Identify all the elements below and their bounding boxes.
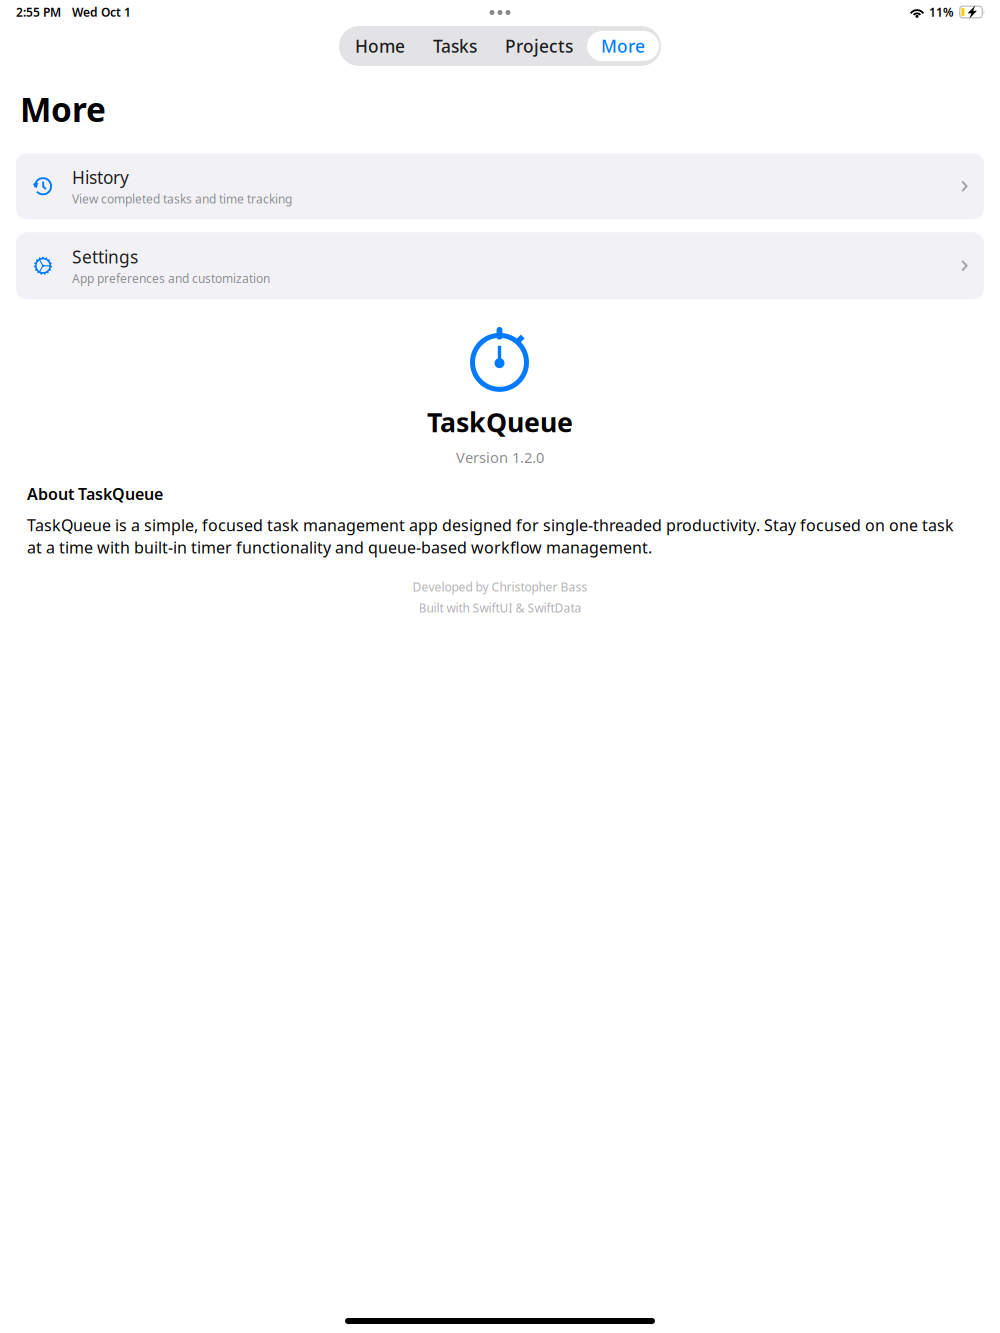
staticText: Developed by Christopher Bass	[412, 579, 587, 595]
staticText: Settings	[72, 245, 138, 268]
staticText: Home	[355, 34, 405, 57]
staticText: More	[20, 87, 106, 131]
staticText: 2:55 PM	[16, 4, 61, 20]
staticText: Version 1.2.0	[456, 448, 544, 467]
staticText: More	[601, 34, 645, 57]
staticText: Wed Oct 1	[72, 4, 131, 20]
staticText: Projects	[505, 34, 573, 57]
staticText: 11%	[929, 4, 954, 20]
staticText: TaskQueue	[427, 404, 573, 440]
button[interactable]: Projects	[491, 31, 587, 61]
button[interactable]: Home	[341, 31, 419, 61]
button[interactable]: Settings	[16, 232, 984, 299]
staticText: Built with SwiftUI & SwiftData	[418, 600, 581, 616]
staticText: History	[72, 166, 129, 189]
button[interactable]: History	[16, 153, 984, 219]
staticText: App preferences and customization	[72, 270, 270, 286]
staticText: Tasks	[433, 34, 477, 57]
staticText: View completed tasks and time tracking	[72, 191, 292, 207]
button[interactable]: More	[587, 31, 659, 61]
staticText: About TaskQueue	[27, 483, 163, 504]
staticText: TaskQueue is a simple, focused task mana…	[27, 514, 954, 558]
button[interactable]: Tasks	[419, 31, 491, 61]
